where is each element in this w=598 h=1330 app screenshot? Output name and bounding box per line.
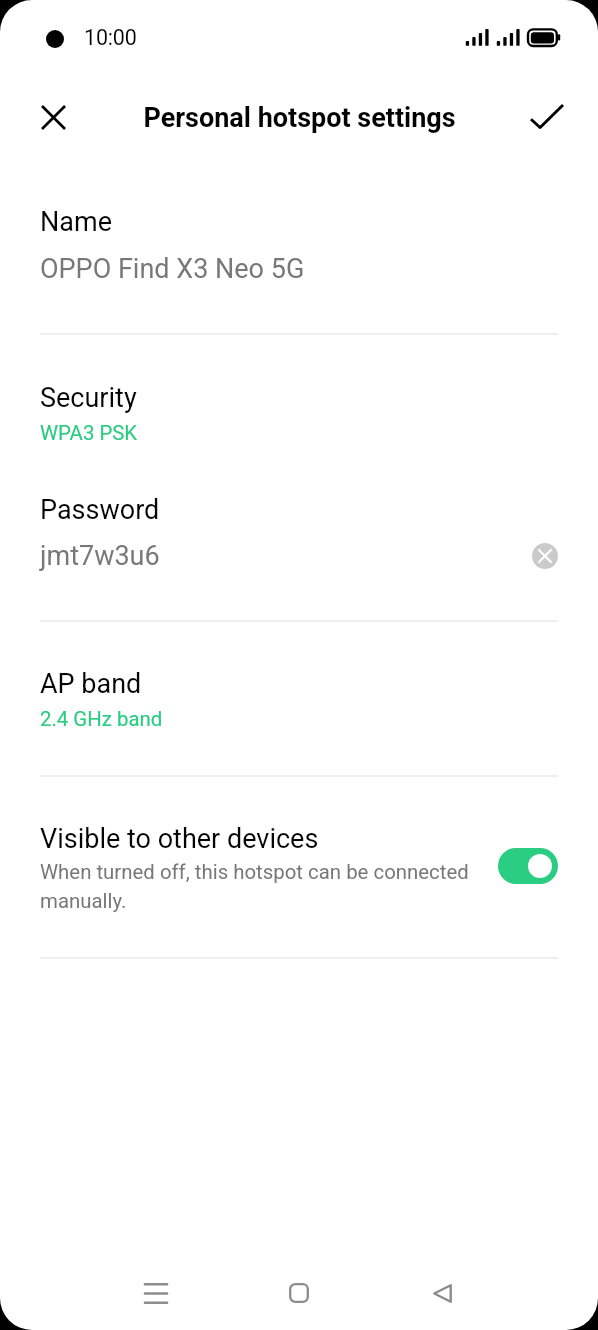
button[interactable]: Clear password <box>532 543 558 569</box>
staticText: 2.4 GHz band <box>40 707 163 731</box>
button[interactable]: Close <box>27 91 79 143</box>
staticText: Password <box>40 494 160 526</box>
button[interactable]: Home <box>258 1266 340 1320</box>
staticText: Name <box>40 206 112 238</box>
staticText: Visible to other devices <box>40 823 319 855</box>
staticText: OPPO Find X3 Neo 5G <box>40 253 305 285</box>
staticText: Security <box>40 382 137 414</box>
staticText: When turned off, this hotspot can be con… <box>40 860 490 913</box>
staticText: WPA3 PSK <box>40 421 138 445</box>
staticText: jmt7w3u6 <box>40 540 160 572</box>
button[interactable]: Recent apps <box>115 1266 197 1320</box>
button[interactable]: Visible to other devices <box>498 848 558 884</box>
button[interactable]: Back <box>401 1266 483 1320</box>
button[interactable]: Confirm <box>521 90 573 142</box>
staticText: AP band <box>40 668 142 700</box>
staticText: Personal hotspot settings <box>143 102 456 134</box>
staticText: 10:00 <box>84 25 137 50</box>
